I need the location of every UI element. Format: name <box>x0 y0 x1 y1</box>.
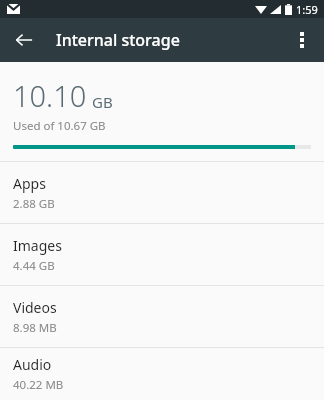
button[interactable]: Images <box>0 224 324 285</box>
staticText: 4.44 GB <box>13 258 55 274</box>
staticText: 10.10 <box>13 76 87 115</box>
staticText: 1:59 <box>296 2 318 17</box>
staticText: Internal storage <box>56 29 180 51</box>
button[interactable]: Audio <box>0 348 324 400</box>
button[interactable]: Back <box>8 24 40 56</box>
staticText: Used of 10.67 GB <box>13 118 106 134</box>
staticText: Audio <box>13 355 52 374</box>
button[interactable]: More options <box>286 24 318 56</box>
staticText: GB <box>92 92 113 112</box>
staticText: 8.98 MB <box>13 320 57 336</box>
staticText: Apps <box>13 174 46 193</box>
staticText: Videos <box>13 298 57 317</box>
button[interactable]: Apps <box>0 162 324 223</box>
staticText: 40.22 MB <box>13 377 64 393</box>
button[interactable]: Videos <box>0 286 324 347</box>
staticText: 2.88 GB <box>13 196 55 212</box>
staticText: Images <box>13 236 62 255</box>
